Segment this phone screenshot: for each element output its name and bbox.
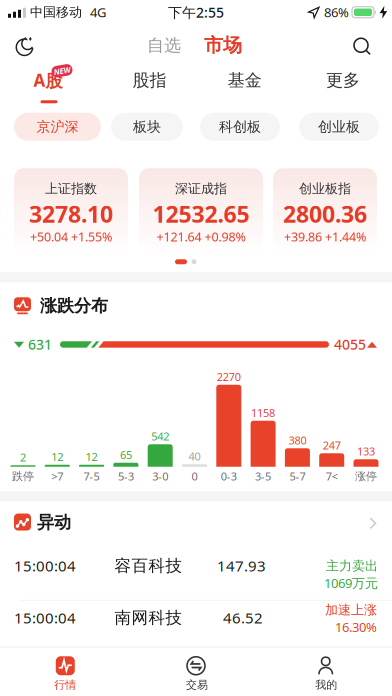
- staticText: 板块: [133, 118, 161, 135]
- staticText: +121.64 +0.98%: [156, 228, 245, 245]
- staticText: 跌停: [12, 469, 34, 483]
- button[interactable]: 上证指数: [14, 168, 128, 252]
- staticText: 542: [151, 429, 169, 444]
- staticText: 3-5: [255, 469, 271, 484]
- staticText: 2270: [217, 369, 241, 384]
- staticText: 自选: [147, 34, 181, 56]
- button[interactable]: 创业板: [299, 113, 379, 141]
- button[interactable]: 板块: [111, 113, 183, 141]
- staticText: 1069万元: [324, 574, 378, 592]
- staticText: 主力卖出: [326, 558, 378, 574]
- button[interactable]: 股指: [98, 62, 196, 103]
- staticText: 异动: [37, 511, 71, 533]
- staticText: >7: [51, 469, 63, 484]
- staticText: 基金: [228, 69, 262, 91]
- staticText: 0-3: [221, 469, 237, 484]
- staticText: 380: [288, 433, 306, 448]
- staticText: 15:00:04: [14, 607, 76, 628]
- button[interactable]: 深证成指: [139, 168, 263, 252]
- staticText: 科创板: [219, 118, 261, 135]
- staticText: NEW: [53, 65, 70, 76]
- staticText: 15:00:04: [14, 555, 76, 576]
- staticText: 南网科技: [114, 607, 182, 628]
- button[interactable]: 搜索: [352, 37, 371, 56]
- staticText: 5-7: [289, 469, 305, 484]
- staticText: 涨跌分布: [40, 295, 108, 316]
- staticText: 下午2:55: [168, 3, 224, 22]
- staticText: 1158: [251, 405, 275, 420]
- staticText: 市场: [204, 33, 242, 57]
- staticText: 133: [357, 444, 375, 459]
- staticText: 更多: [326, 69, 360, 91]
- staticText: 16.30%: [335, 618, 377, 636]
- button[interactable]: 异动: [0, 501, 392, 542]
- staticText: 65: [120, 447, 132, 462]
- staticText: 上证指数: [45, 181, 97, 197]
- button[interactable]: 科创板: [200, 113, 280, 141]
- staticText: 容百科技: [114, 555, 182, 576]
- staticText: A股: [33, 69, 62, 92]
- button[interactable]: 夜间模式: [15, 36, 35, 57]
- staticText: 5-3: [118, 469, 134, 484]
- staticText: 京沪深: [36, 118, 78, 135]
- staticText: 0: [191, 469, 197, 484]
- staticText: 4G: [90, 3, 106, 21]
- staticText: 中国移动: [30, 4, 82, 20]
- staticText: 行情: [54, 678, 76, 692]
- staticText: 创业板指: [299, 181, 351, 197]
- staticText: 3-0: [152, 469, 168, 484]
- staticText: 12: [51, 449, 63, 464]
- button[interactable]: 京沪深: [14, 113, 101, 141]
- button[interactable]: 自选: [147, 34, 181, 56]
- button[interactable]: 我的: [261, 647, 392, 696]
- button[interactable]: 创业板指: [273, 168, 377, 252]
- staticText: 12: [86, 449, 98, 464]
- staticText: 247: [323, 438, 341, 453]
- staticText: 加速上涨: [325, 602, 377, 618]
- staticText: 4055: [334, 335, 366, 354]
- staticText: 40: [188, 449, 200, 464]
- staticText: 我的: [315, 678, 337, 692]
- button[interactable]: 15:00:04: [0, 600, 392, 647]
- button[interactable]: A股: [0, 62, 98, 103]
- button[interactable]: 基金: [196, 62, 294, 103]
- staticText: 7<: [326, 469, 338, 484]
- button[interactable]: 15:00:04: [0, 531, 392, 600]
- staticText: 631: [28, 335, 52, 354]
- staticText: 147.93: [217, 555, 266, 576]
- staticText: +50.04 +1.55%: [30, 228, 112, 245]
- staticText: 12532.65: [152, 198, 249, 229]
- staticText: +39.86 +1.44%: [284, 228, 366, 245]
- button[interactable]: 行情: [0, 647, 130, 696]
- button[interactable]: 市场: [204, 33, 242, 57]
- staticText: 2: [20, 450, 26, 465]
- button[interactable]: 更多: [294, 62, 392, 103]
- button[interactable]: 交易: [131, 647, 261, 696]
- staticText: 2800.36: [283, 198, 367, 229]
- staticText: 深证成指: [175, 181, 227, 197]
- staticText: 股指: [132, 69, 166, 91]
- staticText: 创业板: [318, 118, 360, 135]
- staticText: 46.52: [223, 607, 263, 628]
- staticText: 86%: [324, 3, 349, 21]
- staticText: 交易: [186, 678, 208, 692]
- staticText: 7-5: [84, 469, 100, 484]
- staticText: 涨停: [355, 469, 377, 483]
- staticText: 3278.10: [29, 198, 113, 229]
